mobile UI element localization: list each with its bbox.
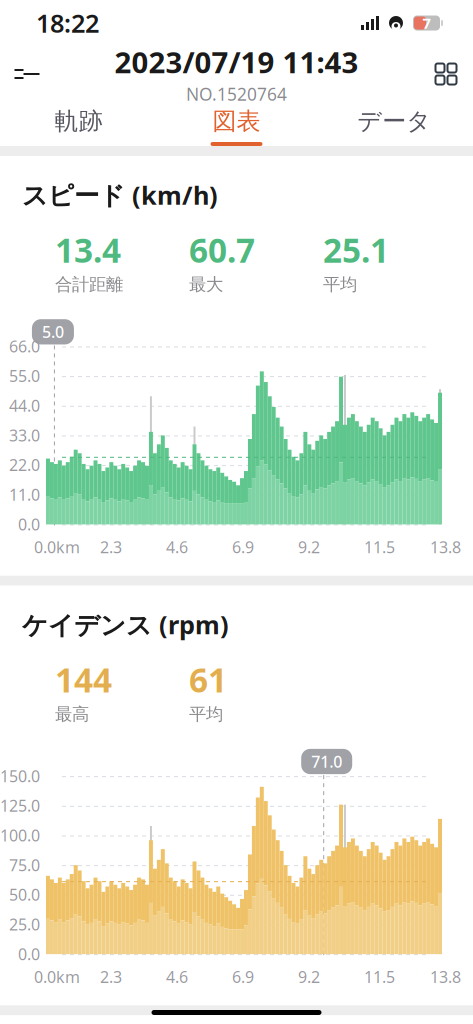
staticText: 13.4 xyxy=(55,228,121,272)
staticText: 50.0 xyxy=(9,884,40,905)
staticText: 13.8 xyxy=(430,966,461,987)
staticText: 0.0km xyxy=(34,966,80,987)
staticText: 33.0 xyxy=(9,425,40,446)
staticText: 11.5 xyxy=(364,966,395,987)
staticText: 71.0 xyxy=(311,751,342,772)
staticText: 44.0 xyxy=(9,395,40,416)
staticText: 軌跡 xyxy=(55,106,103,136)
staticText: 55.0 xyxy=(9,365,40,386)
staticText: 13.8 xyxy=(430,536,461,558)
staticText: 144 xyxy=(55,657,112,702)
staticText: 150.0 xyxy=(0,765,40,786)
staticText: 最高 xyxy=(55,704,89,725)
button[interactable]: Back xyxy=(0,50,54,98)
staticText: 0.0km xyxy=(34,536,80,558)
staticText: 6.9 xyxy=(232,966,254,987)
staticText: 2023/07/19 11:43 xyxy=(114,42,358,81)
staticText: 60.7 xyxy=(189,228,255,272)
staticText: 図表 xyxy=(212,106,260,136)
staticText: 18:22 xyxy=(36,6,99,40)
staticText: 2.3 xyxy=(100,536,122,558)
button[interactable]: Grid view xyxy=(419,50,473,98)
staticText: 9.2 xyxy=(298,966,320,987)
button[interactable]: データ xyxy=(315,98,473,146)
staticText: 4.6 xyxy=(166,536,188,558)
staticText: 合計距離 xyxy=(55,274,123,295)
staticText: NO.1520764 xyxy=(186,82,287,105)
staticText: 66.0 xyxy=(9,336,40,357)
staticText: 7 xyxy=(422,13,430,33)
button[interactable]: 図表 xyxy=(158,98,315,146)
staticText: 6.9 xyxy=(232,536,254,558)
staticText: 5.0 xyxy=(42,321,64,342)
staticText: 最大 xyxy=(189,274,223,295)
staticText: 0.0 xyxy=(18,514,40,535)
staticText: スピード (km/h) xyxy=(22,178,218,212)
staticText: 75.0 xyxy=(9,854,40,875)
staticText: 11.5 xyxy=(364,536,395,558)
staticText: ケイデンス (rpm) xyxy=(22,608,229,641)
button[interactable]: 軌跡 xyxy=(0,98,158,146)
staticText: 4.6 xyxy=(166,966,188,987)
staticText: 22.0 xyxy=(9,454,40,475)
staticText: 平均 xyxy=(189,704,223,725)
staticText: 125.0 xyxy=(0,795,40,816)
staticText: 100.0 xyxy=(0,825,40,846)
staticText: 9.2 xyxy=(298,536,320,558)
staticText: 25.1 xyxy=(323,228,389,272)
staticText: 11.0 xyxy=(9,484,40,505)
staticText: 25.0 xyxy=(9,914,40,935)
staticText: 平均 xyxy=(323,274,357,295)
staticText: 0.0 xyxy=(18,943,40,964)
staticText: 2.3 xyxy=(100,966,122,987)
staticText: データ xyxy=(357,106,431,136)
staticText: 61 xyxy=(189,657,227,702)
